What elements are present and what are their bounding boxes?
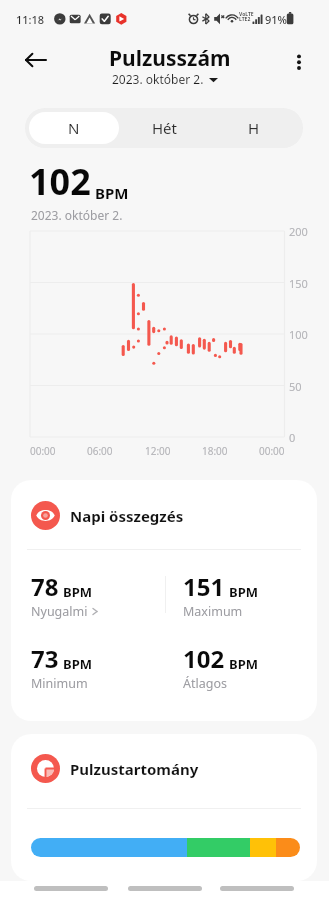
staticText: 0	[289, 430, 296, 445]
button[interactable]: Hét	[119, 112, 209, 144]
staticText: 102	[29, 157, 91, 206]
staticText: Nyugalmi	[31, 603, 88, 620]
button[interactable]: Recents	[34, 879, 108, 897]
staticText: 2023. október 2.	[31, 207, 123, 223]
staticText: 102	[183, 642, 225, 675]
staticText: 12:00	[145, 444, 171, 458]
staticText: Pulzusszám	[109, 44, 231, 73]
staticText: Maximum	[183, 603, 243, 620]
staticText: 100	[289, 327, 308, 342]
staticText: N	[68, 118, 80, 138]
staticText: BPM	[229, 655, 258, 673]
staticText: BPM	[63, 583, 92, 601]
staticText: Pulzustartomány	[70, 759, 199, 779]
staticText: 73	[31, 642, 59, 675]
staticText: 91%	[265, 12, 287, 27]
staticText: 78	[31, 570, 59, 603]
button[interactable]: N	[29, 112, 119, 144]
staticText: 00:00	[259, 444, 285, 458]
staticText: BPM	[63, 655, 92, 673]
button[interactable]: Home	[128, 879, 202, 897]
staticText: Minimum	[31, 675, 88, 692]
staticText: 50	[289, 379, 302, 394]
staticText: 11:18	[16, 12, 45, 27]
staticText: Átlagos	[183, 675, 227, 692]
button[interactable]: Back	[18, 42, 54, 78]
button[interactable]: More options	[281, 42, 317, 78]
staticText: 151	[183, 570, 225, 603]
button[interactable]: 2023. október 2.	[110, 69, 220, 89]
staticText: BPM	[95, 183, 129, 203]
staticText: 18:00	[202, 444, 228, 458]
staticText: Napi összegzés	[70, 506, 184, 526]
staticText: BPM	[229, 583, 258, 601]
staticText: 06:00	[87, 444, 113, 458]
staticText: VoLTE	[239, 11, 254, 18]
staticText: 00:00	[30, 444, 56, 458]
staticText: H	[248, 118, 260, 138]
staticText: 150	[289, 276, 308, 291]
staticText: LTE2	[239, 16, 251, 23]
button[interactable]: Back	[220, 879, 294, 897]
button[interactable]: H	[209, 112, 299, 144]
staticText: 2023. október 2.	[112, 71, 204, 87]
staticText: Hét	[152, 118, 177, 138]
staticText: 200	[289, 224, 308, 239]
